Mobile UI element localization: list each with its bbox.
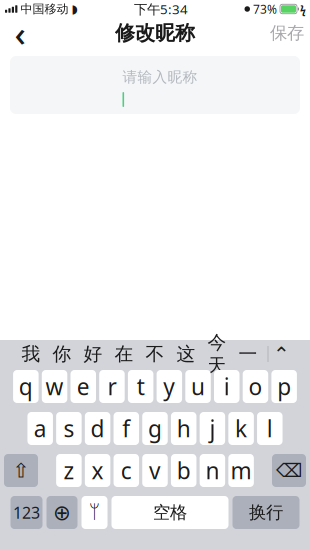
staticText: ⌃ (273, 343, 290, 365)
button[interactable]: y (157, 370, 182, 403)
staticText: m (231, 455, 252, 485)
staticText: 好 (84, 342, 103, 365)
staticText: e (77, 371, 90, 401)
staticText: 你 (53, 342, 72, 365)
button[interactable]: 好 (78, 341, 109, 367)
staticText: k (235, 413, 247, 443)
button[interactable]: z (56, 454, 82, 487)
button[interactable]: Shift (4, 454, 38, 487)
button[interactable]: h (171, 412, 196, 445)
button[interactable]: 这 (171, 341, 202, 367)
staticText: y (163, 371, 175, 401)
staticText: 123 (13, 502, 40, 523)
button[interactable]: g (142, 412, 168, 445)
button[interactable]: 换行 (232, 496, 299, 529)
button[interactable]: Collapse keyboard (268, 341, 294, 367)
button[interactable]: o (243, 370, 268, 403)
button[interactable]: l (257, 412, 282, 445)
staticText: g (148, 413, 162, 443)
staticText: h (177, 413, 191, 443)
staticText: 下午5:34 (134, 0, 188, 18)
button[interactable]: v (142, 454, 168, 487)
button[interactable]: 123 (10, 496, 42, 529)
staticText: d (91, 413, 105, 443)
button[interactable]: 保存 (264, 18, 310, 48)
staticText: ⌫ (276, 460, 302, 481)
button[interactable]: q (13, 370, 39, 403)
staticText: w (45, 371, 63, 401)
staticText: 不 (146, 342, 165, 365)
button[interactable]: 不 (140, 341, 171, 367)
button[interactable]: m (228, 454, 254, 487)
staticText: r (107, 371, 116, 401)
staticText: ϟ (300, 2, 306, 16)
button[interactable]: 空格 (111, 496, 228, 529)
staticText: 保存 (270, 22, 304, 44)
staticText: 73% (253, 1, 277, 17)
button[interactable]: 在 (109, 341, 140, 367)
staticText: ⊕ (53, 500, 71, 525)
button[interactable]: n (200, 454, 225, 487)
staticText: n (205, 455, 219, 485)
button[interactable]: i (214, 370, 239, 403)
button[interactable]: 你 (47, 341, 78, 367)
staticText: f (122, 413, 130, 443)
staticText: b (177, 455, 191, 485)
staticText: 今天 (208, 331, 227, 377)
button[interactable]: j (200, 412, 225, 445)
staticText: l (267, 413, 273, 443)
staticText: z (63, 455, 74, 485)
staticText: ᛘ (89, 503, 100, 522)
staticText: 在 (115, 342, 134, 365)
button[interactable]: w (42, 370, 67, 403)
button[interactable]: k (228, 412, 254, 445)
staticText: 中国移动 (20, 2, 68, 16)
button[interactable]: 今天 (202, 341, 233, 367)
staticText: ‹ (14, 10, 25, 56)
button[interactable]: r (99, 370, 125, 403)
staticText: t (137, 371, 145, 401)
button[interactable]: e (70, 370, 96, 403)
button[interactable]: s (56, 412, 82, 445)
button[interactable]: u (185, 370, 211, 403)
staticText: o (248, 371, 262, 401)
staticText: 这 (177, 342, 196, 365)
staticText: s (63, 413, 74, 443)
button[interactable]: p (271, 370, 297, 403)
button[interactable]: t (128, 370, 153, 403)
staticText: i (224, 371, 230, 401)
button[interactable]: Switch keyboard (46, 496, 77, 529)
staticText: u (191, 371, 205, 401)
staticText: 空格 (153, 502, 187, 523)
staticText: ◗ (71, 2, 77, 16)
button[interactable]: a (27, 412, 53, 445)
staticText: 一 (239, 342, 258, 365)
staticText: 请输入昵称 (122, 68, 197, 86)
staticText: p (277, 371, 291, 401)
button[interactable]: f (113, 412, 139, 445)
button[interactable]: Back (0, 18, 40, 48)
staticText: ⇧ (12, 459, 29, 482)
button[interactable]: Dictation (81, 496, 107, 529)
button[interactable]: c (114, 454, 139, 487)
button[interactable]: 一 (233, 341, 264, 367)
button[interactable]: 我 (16, 341, 47, 367)
button[interactable]: Delete (272, 454, 306, 487)
staticText: 修改昵称 (115, 21, 195, 45)
staticText: 换行 (249, 502, 283, 523)
button[interactable]: x (85, 454, 110, 487)
button[interactable]: d (85, 412, 110, 445)
staticText: q (19, 371, 33, 401)
staticText: c (121, 455, 132, 485)
button[interactable]: b (171, 454, 196, 487)
staticText: v (149, 455, 161, 485)
staticText: x (92, 455, 104, 485)
staticText: j (209, 413, 215, 443)
staticText: 我 (22, 342, 41, 365)
staticText: a (34, 413, 47, 443)
